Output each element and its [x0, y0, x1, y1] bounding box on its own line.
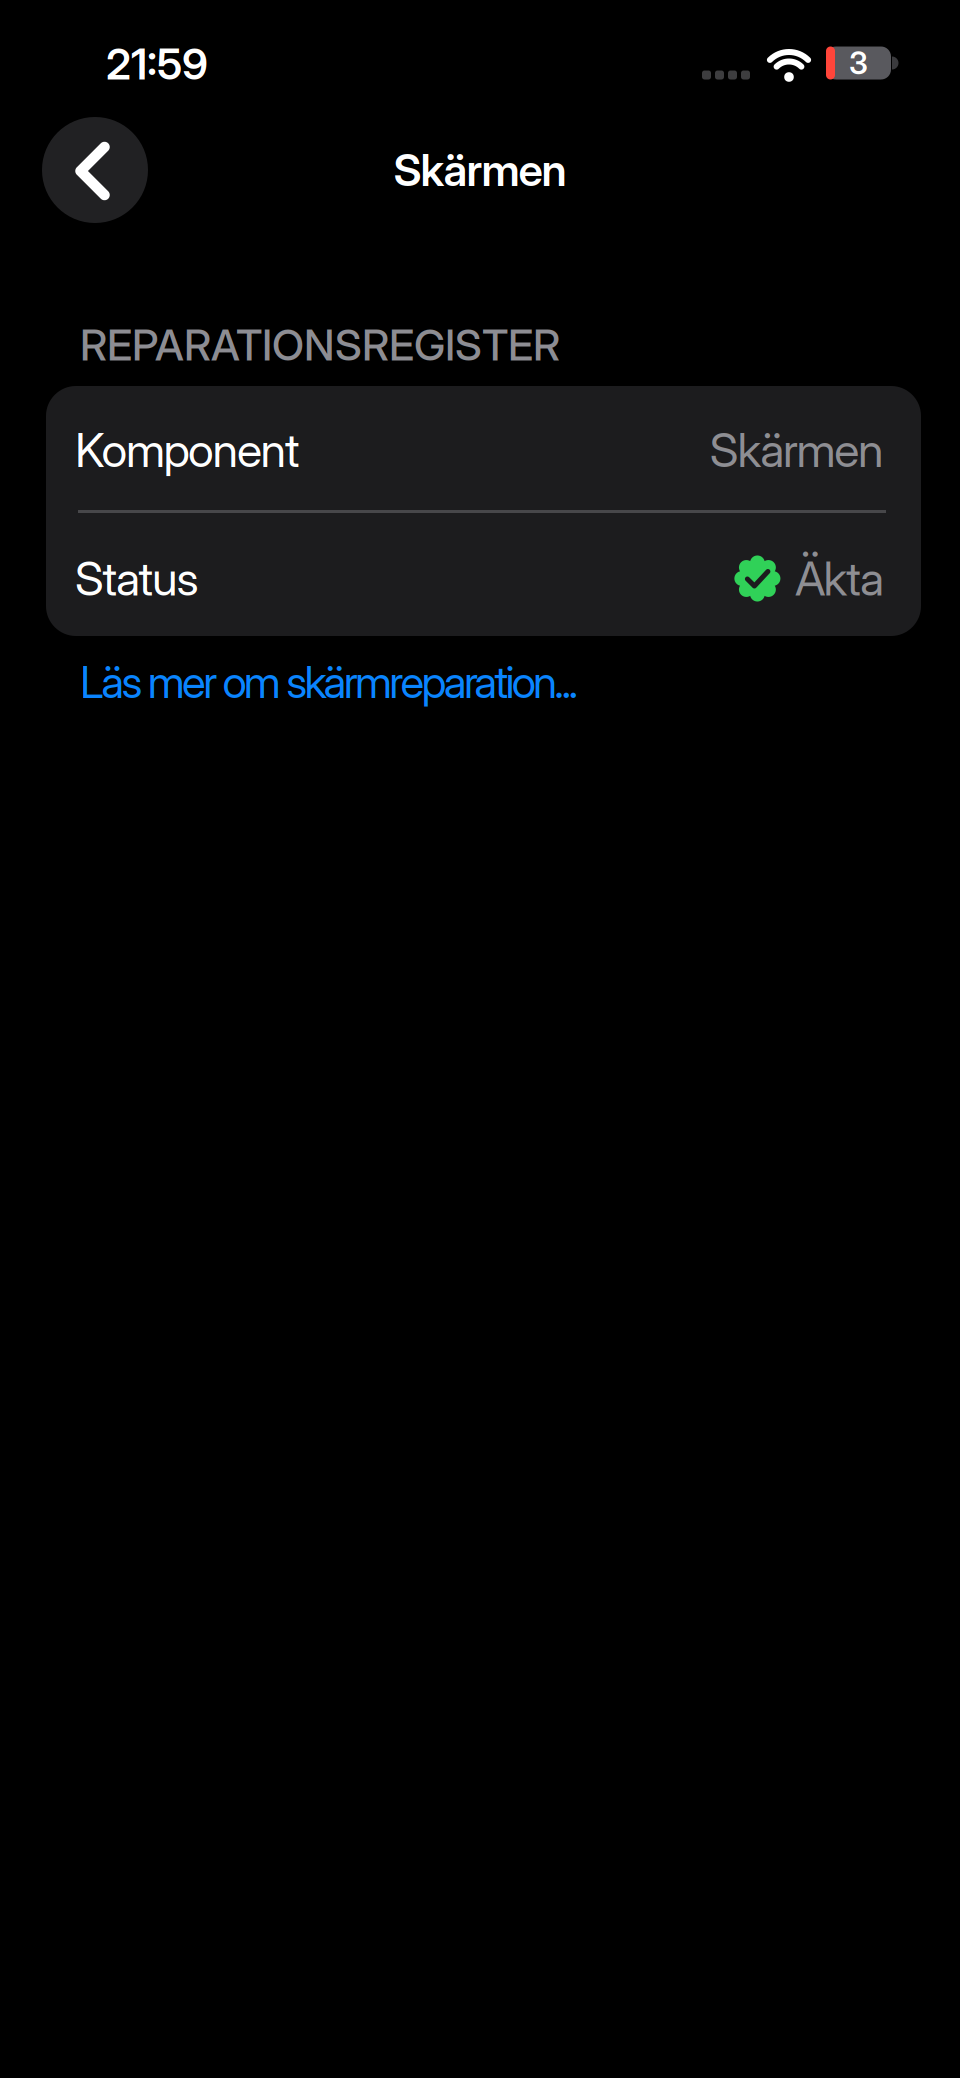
button[interactable]: Läs mer om skärmreparation...	[80, 656, 579, 708]
staticText: Skärmen	[710, 422, 884, 478]
staticText: Äkta	[795, 551, 884, 606]
staticText: 3	[849, 45, 868, 81]
staticText: 21:59	[106, 39, 208, 89]
staticText: Status	[75, 551, 198, 606]
staticText: Komponent	[75, 422, 300, 478]
button[interactable]: Back	[42, 117, 148, 223]
staticText: Läs mer om skärmreparation...	[80, 656, 579, 708]
staticText: Skärmen	[393, 144, 566, 196]
staticText: REPARATIONSREGISTER	[80, 320, 560, 370]
